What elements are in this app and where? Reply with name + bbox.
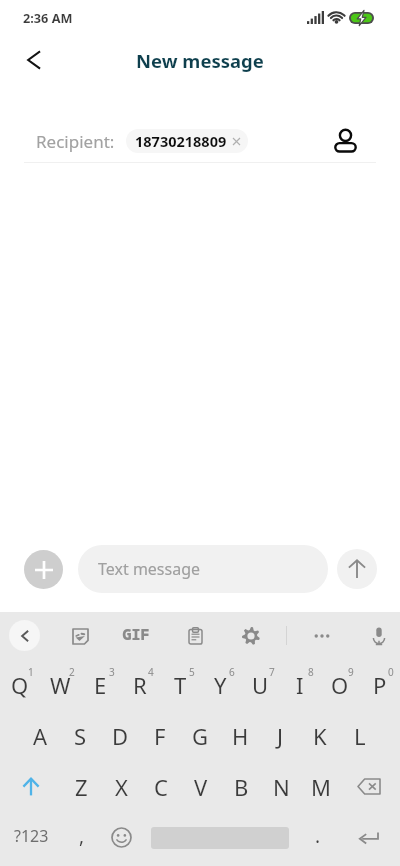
staticText: K	[313, 721, 327, 751]
button[interactable]: P	[360, 659, 400, 710]
staticText: E	[94, 670, 107, 700]
staticText: Z	[75, 772, 88, 802]
staticText: 2:36 AM	[23, 9, 73, 26]
staticText: 3	[109, 665, 115, 679]
button[interactable]: A	[20, 710, 60, 761]
button[interactable]: E	[80, 659, 120, 710]
staticText: 4	[148, 665, 154, 679]
button[interactable]: Clipboard	[179, 620, 211, 652]
button[interactable]: F	[140, 710, 180, 761]
button[interactable]: Y	[200, 659, 240, 710]
staticText: 2	[69, 665, 75, 679]
button[interactable]: Text message	[78, 545, 328, 593]
button[interactable]: N	[261, 761, 301, 812]
staticText: ?123	[14, 825, 49, 847]
button[interactable]: X	[101, 761, 141, 812]
button[interactable]: G	[180, 710, 220, 761]
button[interactable]: S	[60, 710, 100, 761]
staticText: New message	[136, 48, 264, 73]
staticText: M	[311, 772, 331, 802]
staticText: V	[194, 772, 208, 802]
staticText: L	[354, 721, 366, 751]
staticText: O	[331, 670, 349, 700]
staticText: 18730218809	[135, 131, 227, 151]
button[interactable]: H	[220, 710, 260, 761]
staticText: T	[174, 670, 187, 700]
button[interactable]: Emoji	[102, 812, 142, 863]
staticText: P	[373, 670, 387, 700]
staticText: J	[277, 721, 284, 751]
button[interactable]: C	[141, 761, 181, 812]
staticText: .	[315, 823, 321, 849]
staticText: GIF	[122, 624, 150, 644]
button[interactable]: I	[280, 659, 320, 710]
staticText: R	[133, 670, 147, 700]
staticText: D	[112, 721, 129, 751]
staticText: Text message	[98, 558, 201, 580]
button[interactable]: D	[100, 710, 140, 761]
button[interactable]: ?123	[0, 812, 62, 863]
button[interactable]: Z	[61, 761, 101, 812]
button[interactable]: T	[160, 659, 200, 710]
button[interactable]: K	[300, 710, 340, 761]
staticText: 1	[28, 665, 34, 679]
button[interactable]: ,	[62, 812, 102, 863]
button[interactable]: Voice input	[363, 620, 395, 652]
staticText: 5	[189, 665, 195, 679]
button[interactable]: More options	[306, 620, 338, 652]
button[interactable]: 18730218809	[126, 129, 248, 153]
staticText: G	[192, 721, 209, 751]
staticText: 7	[269, 665, 275, 679]
staticText: F	[154, 721, 166, 751]
staticText: 0	[388, 665, 394, 679]
button[interactable]: V	[181, 761, 221, 812]
button[interactable]: Send	[337, 549, 377, 589]
button[interactable]: W	[40, 659, 80, 710]
staticText: ,	[79, 823, 85, 849]
staticText: B	[234, 772, 249, 802]
staticText: S	[74, 721, 87, 751]
button[interactable]: Shift	[0, 761, 61, 812]
staticText: U	[252, 670, 269, 700]
button[interactable]: GIF	[116, 620, 156, 652]
staticText: 9	[348, 665, 354, 679]
staticText: W	[50, 670, 71, 700]
staticText: Recipient:	[36, 130, 115, 153]
button[interactable]: Backspace	[341, 761, 400, 812]
button[interactable]: M	[301, 761, 341, 812]
staticText: A	[33, 721, 48, 751]
staticText: 8	[308, 665, 314, 679]
button[interactable]: Settings	[235, 620, 267, 652]
button[interactable]: Space	[142, 812, 298, 863]
button[interactable]: Back	[9, 620, 40, 651]
button[interactable]: L	[340, 710, 380, 761]
button[interactable]: Back	[14, 41, 54, 81]
button[interactable]: J	[260, 710, 300, 761]
button[interactable]: B	[221, 761, 261, 812]
button[interactable]: R	[120, 659, 160, 710]
staticText: I	[296, 670, 304, 700]
button[interactable]: U	[240, 659, 280, 710]
staticText: X	[115, 772, 128, 802]
button[interactable]: Q	[0, 659, 40, 710]
staticText: N	[273, 772, 290, 802]
button[interactable]: Add attachment	[24, 550, 63, 589]
button[interactable]: Stickers	[64, 620, 96, 652]
button[interactable]: .	[298, 812, 338, 863]
staticText: Y	[214, 670, 227, 700]
button[interactable]: O	[320, 659, 360, 710]
staticText: C	[154, 772, 168, 802]
staticText: 6	[229, 665, 235, 679]
staticText: H	[232, 721, 249, 751]
staticText: Q	[11, 670, 29, 700]
button[interactable]: Enter	[338, 812, 400, 863]
button[interactable]: Contacts	[329, 124, 361, 156]
